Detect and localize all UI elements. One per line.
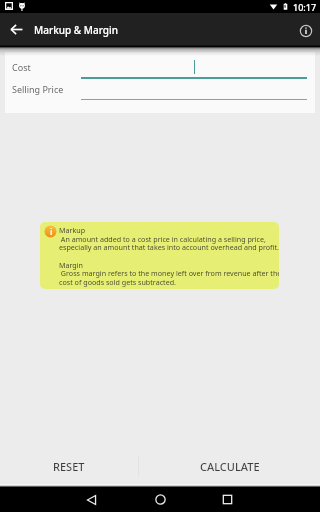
button[interactable]: Info — [291, 13, 320, 46]
button[interactable]: Back — [69, 487, 114, 512]
staticText: Markup & Margin — [34, 23, 118, 37]
staticText: 10:17 — [293, 1, 317, 13]
staticText: Selling Price — [12, 83, 64, 95]
staticText: Margin — [59, 260, 84, 270]
staticText: Markup — [59, 225, 86, 235]
button[interactable]: CALCULATE — [139, 450, 320, 483]
button[interactable]: Recents — [205, 487, 250, 512]
staticText: Gross margin refers to the money left ov… — [59, 268, 279, 278]
staticText: Cost — [12, 61, 31, 73]
button[interactable]: Back — [0, 13, 33, 46]
staticText: An amount added to a cost price in calcu… — [59, 234, 266, 244]
staticText: RESET — [53, 459, 85, 474]
staticText: especially an amount that takes into acc… — [59, 242, 279, 252]
staticText: cost of goods sold gets subtracted. — [59, 277, 176, 287]
staticText: CALCULATE — [200, 459, 260, 474]
button[interactable]: Home — [138, 487, 183, 512]
button[interactable]: RESET — [0, 450, 138, 483]
